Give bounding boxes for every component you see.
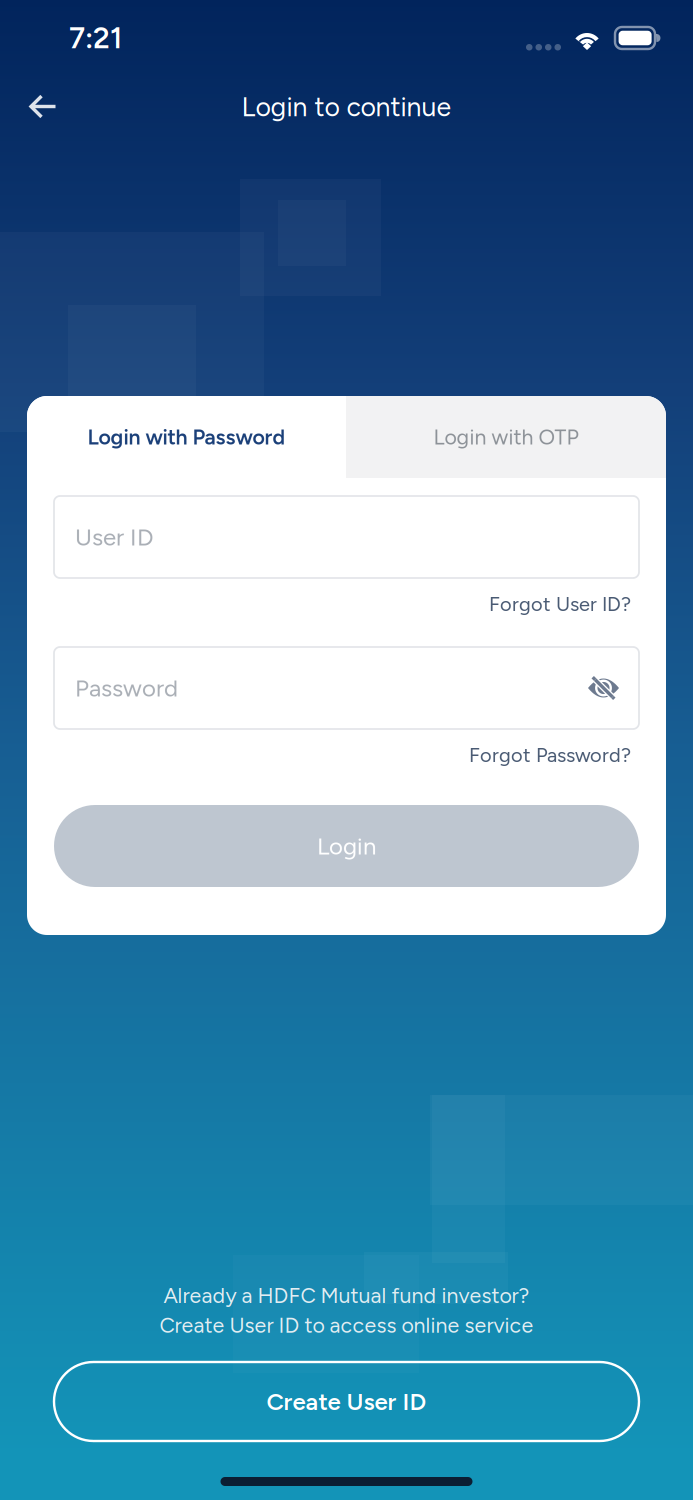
staticText: 7:21 <box>69 20 122 56</box>
staticText: Login with OTP <box>433 424 578 450</box>
staticText: User ID <box>75 523 154 551</box>
staticText: Forgot Password? <box>469 743 631 767</box>
button[interactable]: Forgot User ID? <box>27 578 666 626</box>
staticText: Create User ID <box>266 1387 426 1416</box>
button[interactable]: Show password <box>587 671 620 704</box>
button[interactable]: Back <box>12 78 74 136</box>
staticText: Login <box>317 832 376 860</box>
button[interactable]: Login with Password <box>27 396 346 478</box>
button[interactable]: Login <box>54 805 639 887</box>
staticText: Create User ID to access online service <box>159 1312 533 1338</box>
button[interactable]: Login with OTP <box>346 396 666 478</box>
button[interactable]: Create User ID <box>54 1362 639 1441</box>
staticText: Already a HDFC Mutual fund investor? <box>163 1283 529 1308</box>
staticText: Login with Password <box>87 424 285 450</box>
staticText: Login to continue <box>241 91 451 123</box>
staticText: Password <box>75 674 178 702</box>
staticText: Forgot User ID? <box>489 592 631 616</box>
button[interactable]: Forgot Password? <box>27 729 666 777</box>
